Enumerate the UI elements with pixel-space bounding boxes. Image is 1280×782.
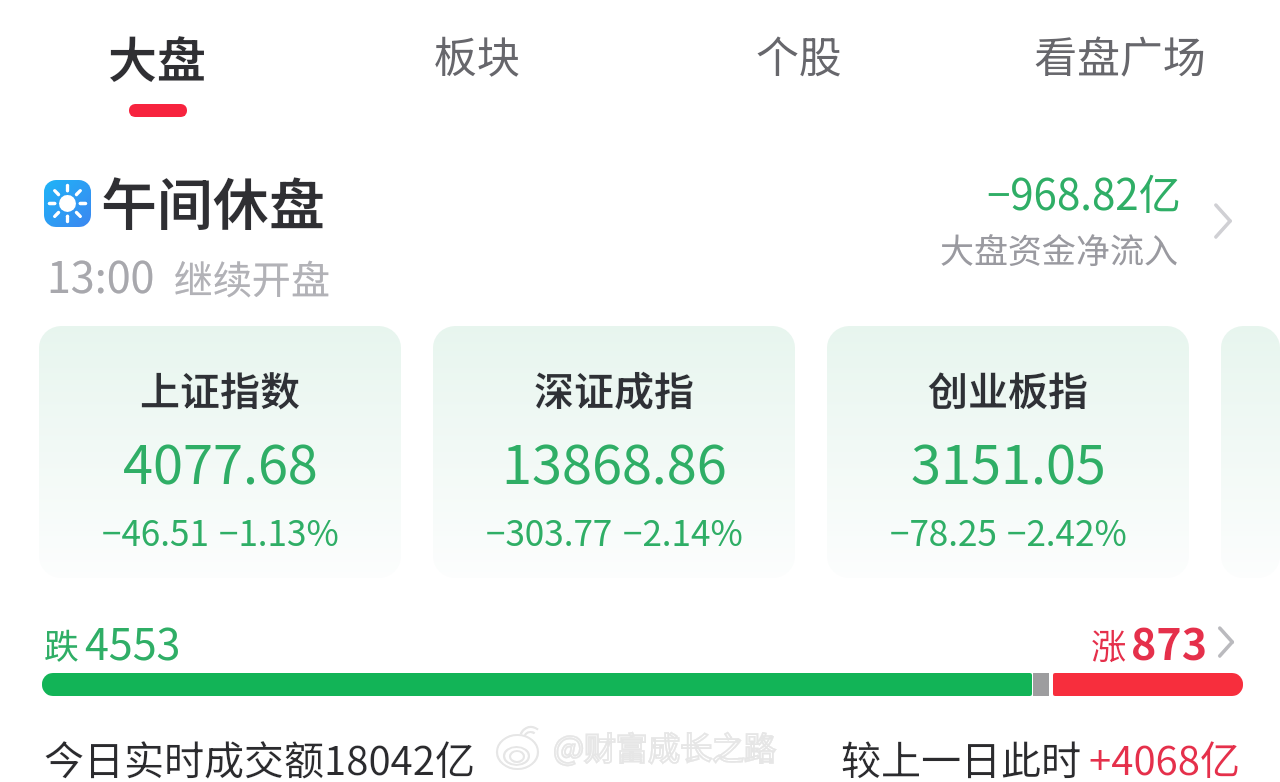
staticText: 4077.68 [123, 421, 318, 499]
staticText: 创业板指 [928, 360, 1088, 418]
staticText: −2.42% [1007, 505, 1127, 556]
staticText: 上证指数 [140, 360, 300, 418]
staticText: 3151.05 [911, 421, 1106, 499]
staticText: 13868.86 [502, 421, 727, 499]
staticText: 今日实时成交额18042亿 [44, 729, 475, 782]
staticText: 4553 [85, 610, 181, 672]
staticText: 大盘 [108, 21, 207, 92]
staticText: −46.51 [102, 505, 209, 556]
button[interactable]: 看盘广场 [1000, 0, 1240, 139]
staticText: 继续开盘 [174, 249, 331, 305]
button[interactable]: 创业板指 [827, 326, 1189, 578]
staticText: 个股 [756, 23, 842, 85]
button[interactable]: 个股 [679, 0, 919, 139]
button[interactable] [1221, 326, 1280, 578]
staticText: 看盘广场 [1034, 23, 1206, 85]
staticText: 涨 [1091, 618, 1127, 669]
button[interactable]: 较上一日此时 [841, 729, 1240, 782]
button[interactable]: 查看涨跌家数详情 [1204, 620, 1248, 664]
staticText: 较上一日此时 [841, 729, 1081, 782]
staticText: 873 [1131, 610, 1208, 672]
button[interactable]: 上证指数 [39, 326, 401, 578]
staticText: 跌 [44, 618, 80, 669]
staticText: @财富成长之路 [553, 723, 777, 769]
staticText: 板块 [434, 23, 520, 85]
staticText: +4068亿 [1089, 729, 1240, 782]
staticText: −2.14% [623, 505, 743, 556]
button[interactable]: 深证成指 [433, 326, 795, 578]
staticText: 大盘资金净流入 [940, 224, 1178, 273]
staticText: −968.82亿 [987, 161, 1181, 222]
button[interactable]: 板块 [357, 0, 597, 139]
staticText: 午间休盘 [101, 160, 325, 241]
button[interactable]: 今日实时成交额18042亿 [44, 729, 475, 782]
staticText: −78.25 [890, 505, 997, 556]
staticText: 深证成指 [534, 360, 694, 418]
button[interactable]: 午间休盘状态 [30, 152, 1250, 304]
staticText: −1.13% [219, 505, 339, 556]
button[interactable]: 跌 [30, 600, 1250, 705]
staticText: 13:00 [47, 243, 155, 305]
button[interactable]: 大盘 [37, 0, 277, 139]
other: 午间休盘状态 [44, 180, 91, 227]
staticText: −303.77 [486, 505, 613, 556]
button[interactable]: 查看大盘资金净流入详情 [1199, 197, 1247, 245]
